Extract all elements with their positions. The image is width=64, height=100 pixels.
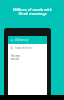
button[interactable]: Search — [8, 46, 47, 50]
staticText: Hindi meanings — [18, 11, 47, 16]
staticText: Millions of words with — [13, 7, 52, 12]
staticText: Recent — [11, 54, 20, 58]
other: Search — [10, 46, 14, 50]
staticText: Dictionary — [15, 38, 29, 42]
staticText: Search here — [15, 46, 32, 50]
staticText: words — [11, 57, 20, 61]
button[interactable]: Open navigation menu — [8, 36, 47, 44]
other: Open navigation menu — [10, 38, 14, 42]
